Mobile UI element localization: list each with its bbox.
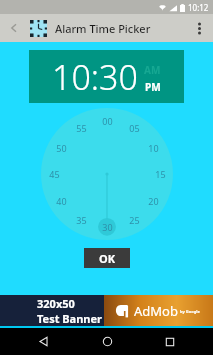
staticText: 45: [49, 168, 60, 180]
staticText: 10:30: [52, 54, 138, 100]
button[interactable]: OK: [84, 248, 130, 268]
button[interactable]: More options: [185, 14, 213, 42]
button[interactable]: Back: [0, 14, 28, 42]
staticText: AdMob: [134, 302, 178, 320]
button[interactable]: PM: [145, 80, 161, 94]
staticText: 10: [148, 142, 159, 154]
button[interactable]: 10:30: [29, 50, 184, 103]
staticText: 05: [129, 122, 140, 134]
staticText: 00: [102, 115, 113, 127]
staticText: 25: [129, 214, 140, 226]
button[interactable]: Advertisement: [0, 295, 213, 326]
button[interactable]: Back: [23, 328, 63, 355]
staticText: 15: [155, 168, 166, 180]
staticText: AM: [144, 63, 161, 77]
button[interactable]: Recent apps: [150, 328, 190, 355]
staticText: 30: [102, 221, 113, 233]
staticText: 10:12: [188, 2, 209, 13]
staticText: 40: [56, 195, 67, 207]
staticText: 55: [76, 122, 87, 134]
staticText: PM: [145, 80, 161, 94]
staticText: Alarm Time Picker: [55, 21, 151, 36]
staticText: Test Banner: [37, 311, 102, 326]
staticText: by Google: [180, 309, 200, 314]
staticText: 35: [76, 214, 87, 226]
staticText: OK: [99, 251, 116, 266]
button[interactable]: Minute dial: [41, 108, 173, 240]
staticText: 50: [56, 142, 67, 154]
staticText: 320x50: [37, 296, 75, 311]
staticText: 20: [148, 195, 159, 207]
button[interactable]: Home: [87, 328, 127, 355]
button[interactable]: AM: [144, 63, 161, 77]
